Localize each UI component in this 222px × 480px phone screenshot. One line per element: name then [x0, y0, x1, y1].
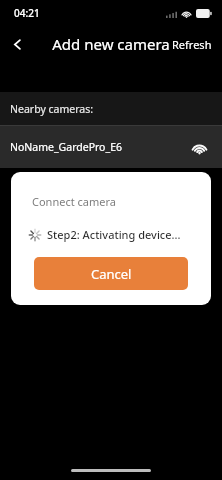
- button[interactable]: NoName_GardePro_E6: [0, 126, 222, 168]
- staticText: Refresh: [172, 37, 212, 52]
- staticText: Add new camera: [52, 34, 170, 54]
- button[interactable]: Refresh: [162, 31, 222, 58]
- button[interactable]: Back: [0, 27, 34, 61]
- staticText: 04:21: [14, 6, 40, 20]
- button[interactable]: Cancel: [34, 257, 188, 290]
- staticText: Cancel: [91, 265, 132, 283]
- staticText: Step2: Activating device...: [47, 227, 181, 242]
- staticText: NoName_GardePro_E6: [10, 140, 122, 154]
- staticText: Nearby cameras:: [10, 102, 93, 116]
- staticText: Connect camera: [32, 194, 116, 209]
